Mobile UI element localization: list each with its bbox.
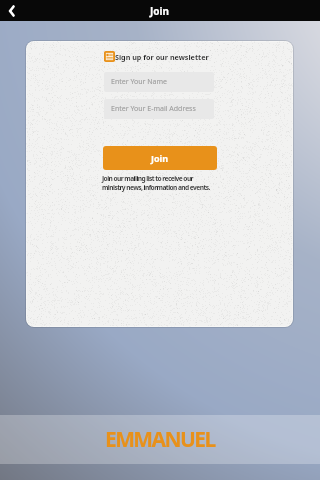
- staticText: Enter Your E-mail Address: [111, 104, 196, 114]
- button[interactable]: Enter Your E-mail Address: [104, 99, 214, 119]
- staticText: Enter Your Name: [111, 77, 168, 87]
- button[interactable]: Enter Your Name: [104, 72, 214, 92]
- button[interactable]: Back: [0, 0, 24, 21]
- staticText: Join our mailing list to receive our min…: [102, 174, 210, 192]
- staticText: Join: [150, 4, 170, 18]
- staticText: Sign up for our newsletter: [115, 52, 209, 62]
- staticText: EMMANUEL: [105, 425, 215, 454]
- button[interactable]: Join: [103, 146, 217, 170]
- staticText: Join: [151, 152, 169, 164]
